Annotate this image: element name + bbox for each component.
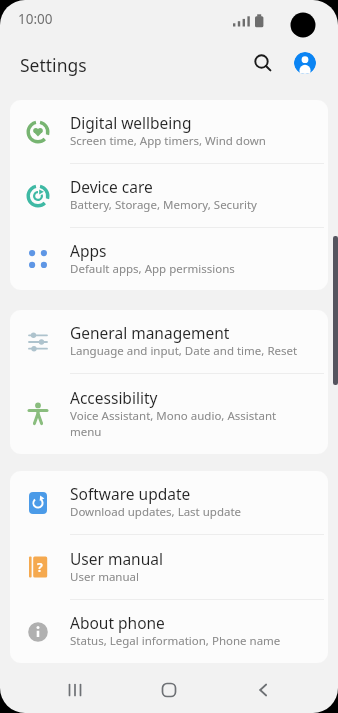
button[interactable] bbox=[134, 667, 204, 713]
staticText: User manual bbox=[70, 569, 139, 585]
staticText: Download updates, Last update bbox=[70, 504, 242, 520]
staticText: Apps bbox=[70, 240, 107, 261]
staticText: Default apps, App permissions bbox=[70, 261, 235, 277]
button[interactable]: Apps bbox=[10, 228, 328, 290]
button[interactable]: ? bbox=[10, 535, 328, 599]
button[interactable] bbox=[294, 52, 316, 74]
staticText: About phone bbox=[70, 612, 165, 633]
staticText: General management bbox=[70, 322, 230, 343]
button[interactable]: Digital wellbeing bbox=[10, 100, 328, 163]
button[interactable] bbox=[228, 667, 298, 713]
staticText: ? bbox=[37, 559, 43, 575]
staticText: Status, Legal information, Phone name bbox=[70, 633, 281, 649]
button[interactable] bbox=[40, 667, 110, 713]
staticText: Device care bbox=[70, 176, 153, 197]
button[interactable]: Accessibility bbox=[10, 374, 328, 454]
button[interactable]: Software update bbox=[10, 471, 328, 534]
staticText: Voice Assistant, Mono audio, Assistant m… bbox=[70, 408, 277, 439]
button[interactable]: About phone bbox=[10, 600, 328, 663]
staticText: User manual bbox=[70, 548, 163, 569]
button[interactable]: General management bbox=[10, 310, 328, 373]
staticText: Software update bbox=[70, 483, 191, 504]
staticText: 10:00 bbox=[18, 10, 53, 28]
button[interactable]: Device care bbox=[10, 164, 328, 227]
staticText: Language and input, Date and time, Reset bbox=[70, 343, 298, 359]
staticText: Battery, Storage, Memory, Security bbox=[70, 197, 257, 213]
staticText: Accessibility bbox=[70, 387, 158, 408]
staticText: Screen time, App timers, Wind down bbox=[70, 133, 266, 149]
staticText: Digital wellbeing bbox=[70, 112, 192, 133]
staticText: Settings bbox=[20, 53, 87, 77]
button[interactable] bbox=[251, 51, 275, 75]
